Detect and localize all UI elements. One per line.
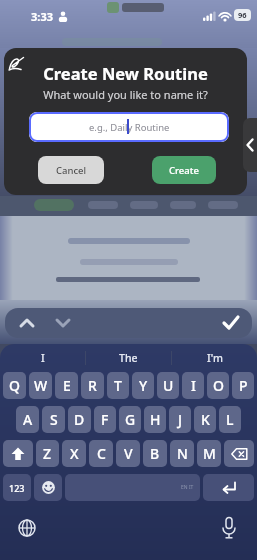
- button[interactable]: V: [116, 440, 140, 467]
- button[interactable]: [18, 519, 36, 537]
- button[interactable]: T: [107, 372, 129, 399]
- staticText: A: [23, 410, 33, 429]
- button[interactable]: X: [62, 440, 86, 467]
- button[interactable]: [3, 440, 33, 467]
- staticText: F: [101, 410, 109, 429]
- button[interactable]: Q: [3, 372, 26, 399]
- staticText: I: [191, 376, 196, 395]
- staticText: K: [201, 410, 210, 429]
- button[interactable]: J: [169, 406, 191, 433]
- staticText: P: [239, 376, 248, 395]
- staticText: U: [163, 376, 174, 395]
- staticText: Create New Routine: [4, 62, 247, 84]
- button[interactable]: B: [143, 440, 167, 467]
- button[interactable]: The: [86, 348, 171, 368]
- button[interactable]: R: [81, 372, 104, 399]
- staticText: H: [150, 410, 161, 429]
- staticText: Q: [9, 376, 20, 395]
- staticText: M: [203, 444, 216, 463]
- staticText: e.g., Daily Routine: [89, 121, 170, 134]
- staticText: EN IT: [181, 484, 194, 491]
- button[interactable]: [243, 118, 257, 172]
- staticText: W: [34, 376, 48, 395]
- staticText: 123: [9, 482, 25, 494]
- button[interactable]: 123: [3, 474, 31, 501]
- staticText: 3:33: [31, 9, 53, 24]
- staticText: E: [63, 376, 71, 395]
- button[interactable]: F: [94, 406, 116, 433]
- staticText: 96: [238, 10, 247, 20]
- button[interactable]: E: [55, 372, 78, 399]
- staticText: L: [226, 410, 234, 429]
- button[interactable]: U: [157, 372, 179, 399]
- staticText: V: [124, 444, 133, 463]
- staticText: X: [70, 444, 79, 463]
- button[interactable]: e.g., Daily Routine: [29, 112, 229, 142]
- staticText: N: [177, 444, 188, 463]
- staticText: G: [125, 410, 136, 429]
- button[interactable]: L: [219, 406, 241, 433]
- button[interactable]: S: [42, 406, 65, 433]
- button[interactable]: [55, 317, 71, 329]
- button[interactable]: G: [119, 406, 141, 433]
- button[interactable]: W: [29, 372, 52, 399]
- staticText: T: [114, 376, 122, 395]
- button[interactable]: O: [207, 372, 229, 399]
- staticText: J: [178, 410, 183, 429]
- button[interactable]: Create: [152, 156, 216, 184]
- button[interactable]: M: [197, 440, 221, 467]
- button[interactable]: H: [144, 406, 166, 433]
- staticText: Cancel: [56, 164, 87, 177]
- button[interactable]: I'm: [172, 348, 257, 368]
- button[interactable]: C: [89, 440, 113, 467]
- button[interactable]: [221, 517, 237, 539]
- staticText: Create: [169, 164, 199, 177]
- button[interactable]: Y: [132, 372, 154, 399]
- button[interactable]: Z: [36, 440, 59, 467]
- button[interactable]: P: [232, 372, 254, 399]
- button[interactable]: I: [0, 348, 85, 368]
- staticText: I: [41, 351, 45, 365]
- button[interactable]: [34, 474, 62, 501]
- staticText: The: [119, 351, 138, 365]
- staticText: What would you like to name it?: [4, 87, 247, 102]
- staticText: Y: [139, 376, 148, 395]
- button[interactable]: I: [182, 372, 204, 399]
- button[interactable]: Cancel: [38, 156, 104, 184]
- button[interactable]: [222, 315, 240, 330]
- button[interactable]: [224, 440, 254, 467]
- staticText: D: [74, 410, 85, 429]
- staticText: Z: [43, 444, 52, 463]
- staticText: C: [97, 444, 106, 463]
- button[interactable]: A: [16, 406, 39, 433]
- staticText: R: [88, 376, 97, 395]
- button[interactable]: EN IT: [65, 474, 200, 501]
- button[interactable]: K: [194, 406, 216, 433]
- staticText: B: [150, 444, 160, 463]
- button[interactable]: N: [170, 440, 194, 467]
- button[interactable]: [203, 474, 254, 501]
- staticText: O: [213, 376, 224, 395]
- staticText: S: [50, 410, 58, 429]
- button[interactable]: D: [68, 406, 91, 433]
- button[interactable]: [19, 317, 35, 329]
- staticText: I'm: [207, 351, 223, 365]
